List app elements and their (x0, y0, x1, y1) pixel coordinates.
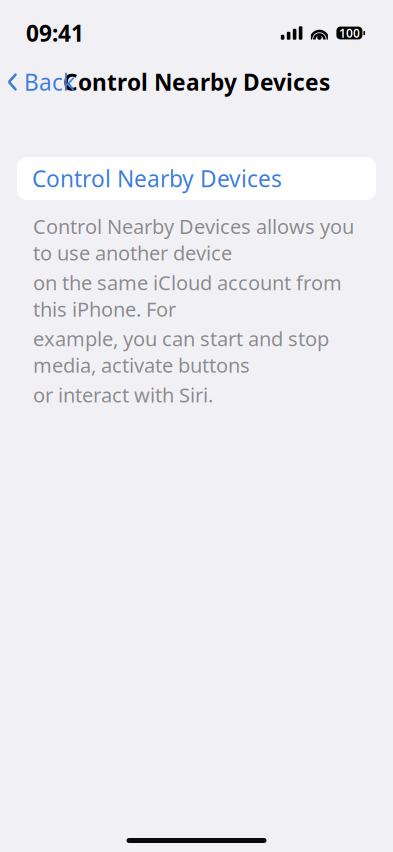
staticText: 09:41 (26, 18, 84, 48)
staticText: Back (24, 67, 75, 97)
staticText: Control Nearby Devices allows you to use… (33, 213, 354, 266)
staticText: example, you can start and stop media, a… (33, 325, 329, 378)
button[interactable]: Back (0, 59, 75, 105)
staticText: 100 (339, 25, 360, 41)
staticText: or interact with Siri. (33, 381, 213, 408)
staticText: on the same iCloud account from this iPh… (33, 269, 342, 322)
button[interactable]: Control Nearby Devices (17, 157, 376, 200)
staticText: Control Nearby Devices (63, 67, 330, 97)
staticText: Control Nearby Devices (32, 163, 282, 193)
